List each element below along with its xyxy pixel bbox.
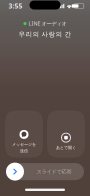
staticText: 우리의 사랑의 간 bbox=[18, 30, 71, 38]
button[interactable]: あとで開く bbox=[47, 111, 85, 158]
staticText: メッセージを bbox=[12, 142, 36, 147]
staticText: スライドで応答 bbox=[36, 168, 71, 175]
staticText: LINE オーディオ bbox=[29, 20, 67, 27]
staticText: 送信 bbox=[20, 148, 28, 153]
staticText: 3:55 bbox=[8, 2, 22, 10]
staticText: あとで開く bbox=[56, 145, 76, 150]
button[interactable]: メッセージを bbox=[5, 111, 43, 158]
button[interactable]: スライドで応答 bbox=[6, 163, 84, 181]
